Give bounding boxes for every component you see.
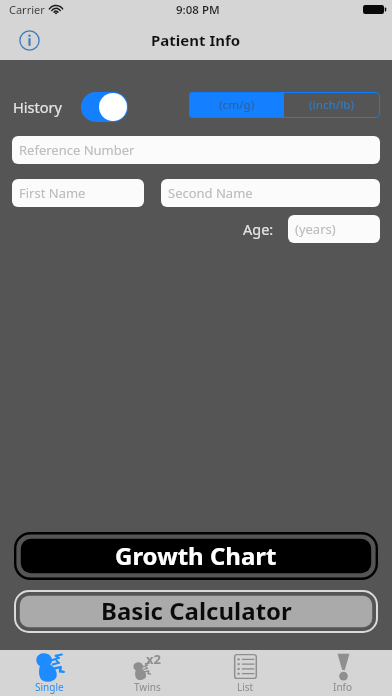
staticText: Growth Chart bbox=[115, 539, 277, 572]
staticText: Carrier bbox=[9, 2, 45, 17]
button[interactable]: (cm/g) bbox=[189, 92, 284, 118]
staticText: Patient Info bbox=[151, 30, 241, 50]
staticText: (years) bbox=[295, 220, 336, 238]
staticText: x2 bbox=[146, 650, 161, 668]
staticText: First Name bbox=[19, 184, 86, 202]
staticText: 9:08 PM bbox=[176, 2, 220, 18]
button[interactable]: Single bbox=[0, 650, 98, 696]
button[interactable]: History toggle bbox=[81, 92, 128, 122]
button[interactable]: Second Name bbox=[161, 179, 380, 207]
staticText: List bbox=[237, 680, 254, 694]
button[interactable]: First Name bbox=[12, 179, 144, 207]
staticText: (cm/g) bbox=[219, 97, 255, 113]
button[interactable]: List bbox=[196, 650, 294, 696]
staticText: Single bbox=[35, 680, 64, 694]
button[interactable]: Reference Number bbox=[12, 136, 380, 164]
button[interactable]: Growth Chart bbox=[14, 532, 378, 580]
button[interactable]: Info bbox=[16, 27, 42, 53]
staticText: Reference Number bbox=[19, 141, 135, 159]
staticText: Info bbox=[333, 680, 353, 694]
staticText: History bbox=[13, 97, 62, 117]
button[interactable]: (years) bbox=[288, 215, 380, 243]
button[interactable]: Info bbox=[294, 650, 392, 696]
button[interactable]: x2 bbox=[98, 650, 196, 696]
staticText: (inch/lb) bbox=[309, 97, 355, 113]
staticText: Age: bbox=[243, 219, 274, 239]
staticText: Basic Calculator bbox=[101, 594, 292, 627]
button[interactable]: (inch/lb) bbox=[284, 92, 380, 118]
staticText: Twins bbox=[134, 680, 161, 694]
button[interactable]: Basic Calculator bbox=[14, 590, 378, 633]
staticText: Second Name bbox=[168, 184, 253, 202]
